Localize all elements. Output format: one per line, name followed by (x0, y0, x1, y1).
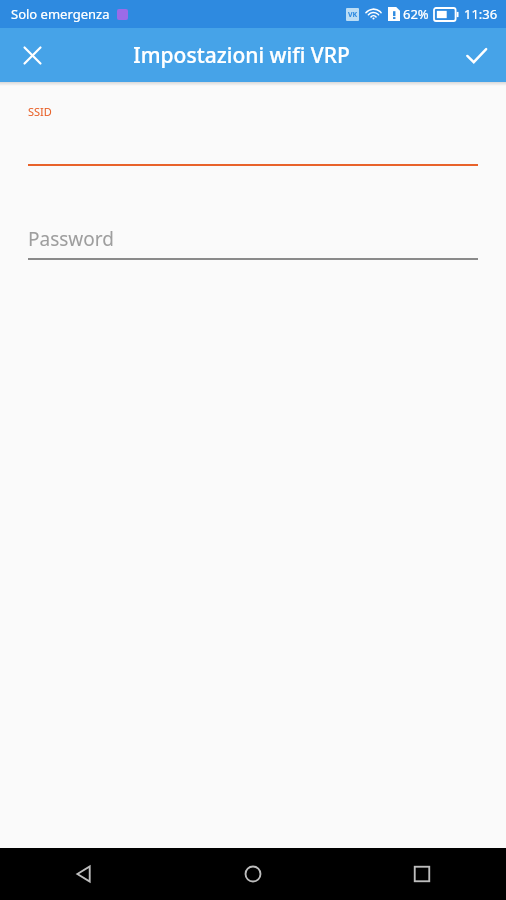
button[interactable]: Home (168, 848, 337, 900)
button[interactable]: Recenti (337, 848, 506, 900)
staticText: Password (28, 226, 114, 252)
staticText: SSID (28, 104, 52, 119)
button[interactable]: Conferma (452, 31, 500, 79)
staticText: 11:36 (464, 5, 498, 23)
staticText: VK (348, 10, 358, 20)
staticText: Solo emergenza (11, 5, 110, 23)
button[interactable]: Indietro (0, 848, 168, 900)
button[interactable]: Password (28, 226, 478, 260)
staticText: Impostazioni wifi VRP (133, 41, 350, 70)
staticText: 62% (403, 5, 429, 23)
button[interactable]: SSID (28, 104, 478, 166)
button[interactable]: Chiudi (8, 31, 56, 79)
